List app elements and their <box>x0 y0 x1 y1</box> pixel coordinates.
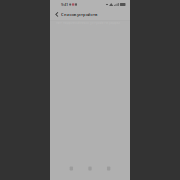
staticText: 9:41 <box>61 2 68 7</box>
staticText: Список устройств <box>61 12 97 17</box>
button[interactable]: Search <box>81 163 99 174</box>
button[interactable]: Home <box>62 163 81 174</box>
button[interactable]: Profile <box>99 163 118 174</box>
button[interactable]: Back <box>53 9 61 20</box>
